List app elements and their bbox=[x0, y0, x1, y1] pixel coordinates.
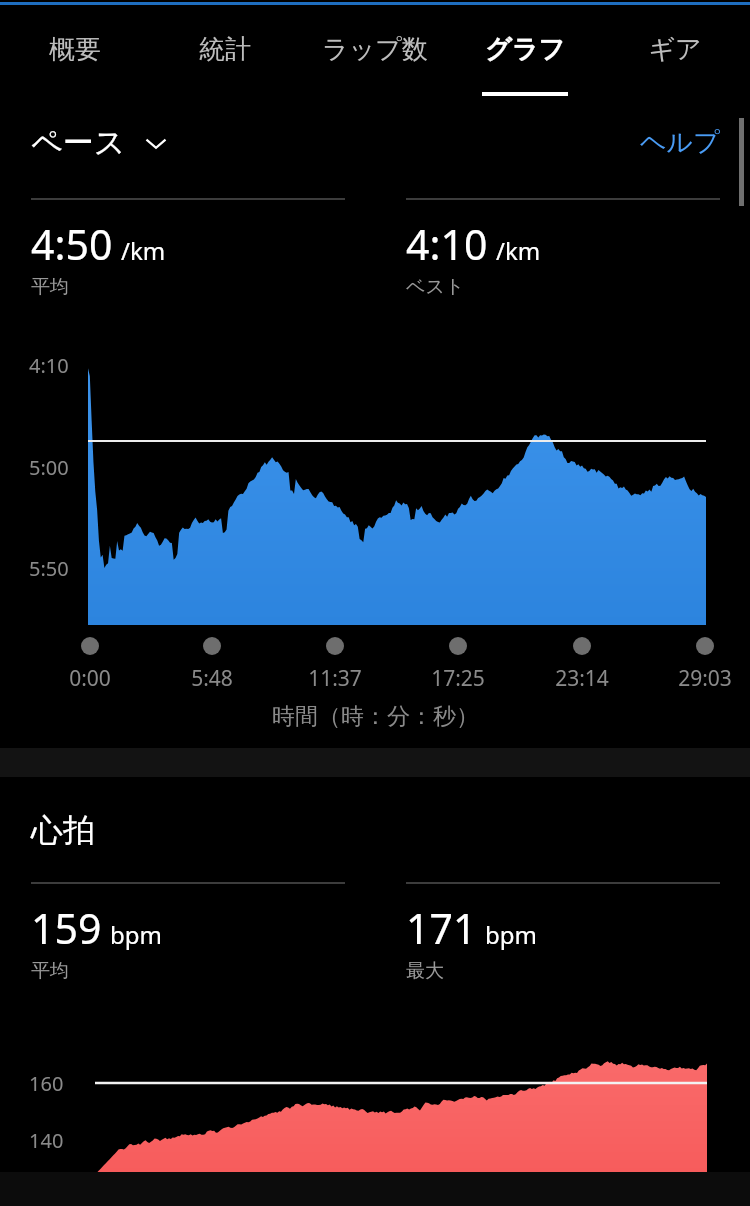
button[interactable]: ペース bbox=[31, 123, 170, 162]
staticText: 時間（時：分：秒） bbox=[272, 702, 479, 731]
button[interactable]: ギア bbox=[600, 0, 750, 105]
button[interactable]: 概要 bbox=[0, 0, 150, 105]
button[interactable]: グラフ bbox=[450, 0, 600, 105]
staticText: 140 bbox=[29, 1127, 64, 1154]
staticText: 4:10 bbox=[29, 352, 69, 379]
staticText: /km bbox=[121, 234, 166, 267]
staticText: 統計 bbox=[199, 33, 251, 66]
staticText: 159 bbox=[31, 900, 102, 956]
staticText: グラフ bbox=[485, 33, 565, 66]
staticText: 4:50 bbox=[31, 216, 113, 272]
staticText: 160 bbox=[29, 1070, 64, 1097]
staticText: ヘルプ bbox=[640, 126, 720, 159]
staticText: 17:25 bbox=[431, 664, 485, 693]
staticText: 4:10 bbox=[406, 216, 488, 272]
staticText: ラップ数 bbox=[322, 33, 428, 66]
staticText: 心拍 bbox=[31, 810, 95, 850]
staticText: 11:37 bbox=[308, 664, 362, 693]
button[interactable]: ヘルプ bbox=[640, 126, 720, 159]
staticText: 概要 bbox=[49, 33, 101, 66]
staticText: 5:50 bbox=[29, 555, 69, 582]
staticText: 平均 bbox=[31, 275, 69, 299]
button[interactable]: 統計 bbox=[150, 0, 300, 105]
staticText: 5:00 bbox=[29, 454, 69, 481]
staticText: 29:03 bbox=[678, 664, 732, 693]
other: Change metric bbox=[142, 129, 170, 157]
staticText: bpm bbox=[110, 918, 162, 951]
staticText: 23:14 bbox=[555, 664, 609, 693]
staticText: 平均 bbox=[31, 959, 69, 983]
staticText: 5:48 bbox=[191, 664, 233, 693]
staticText: 171 bbox=[406, 900, 477, 956]
staticText: ペース bbox=[31, 123, 126, 162]
staticText: ギア bbox=[648, 33, 702, 66]
button[interactable]: ラップ数 bbox=[300, 0, 450, 105]
staticText: 最大 bbox=[406, 959, 444, 983]
staticText: ベスト bbox=[406, 275, 465, 299]
staticText: /km bbox=[496, 234, 541, 267]
staticText: bpm bbox=[485, 918, 537, 951]
staticText: 0:00 bbox=[69, 664, 111, 693]
